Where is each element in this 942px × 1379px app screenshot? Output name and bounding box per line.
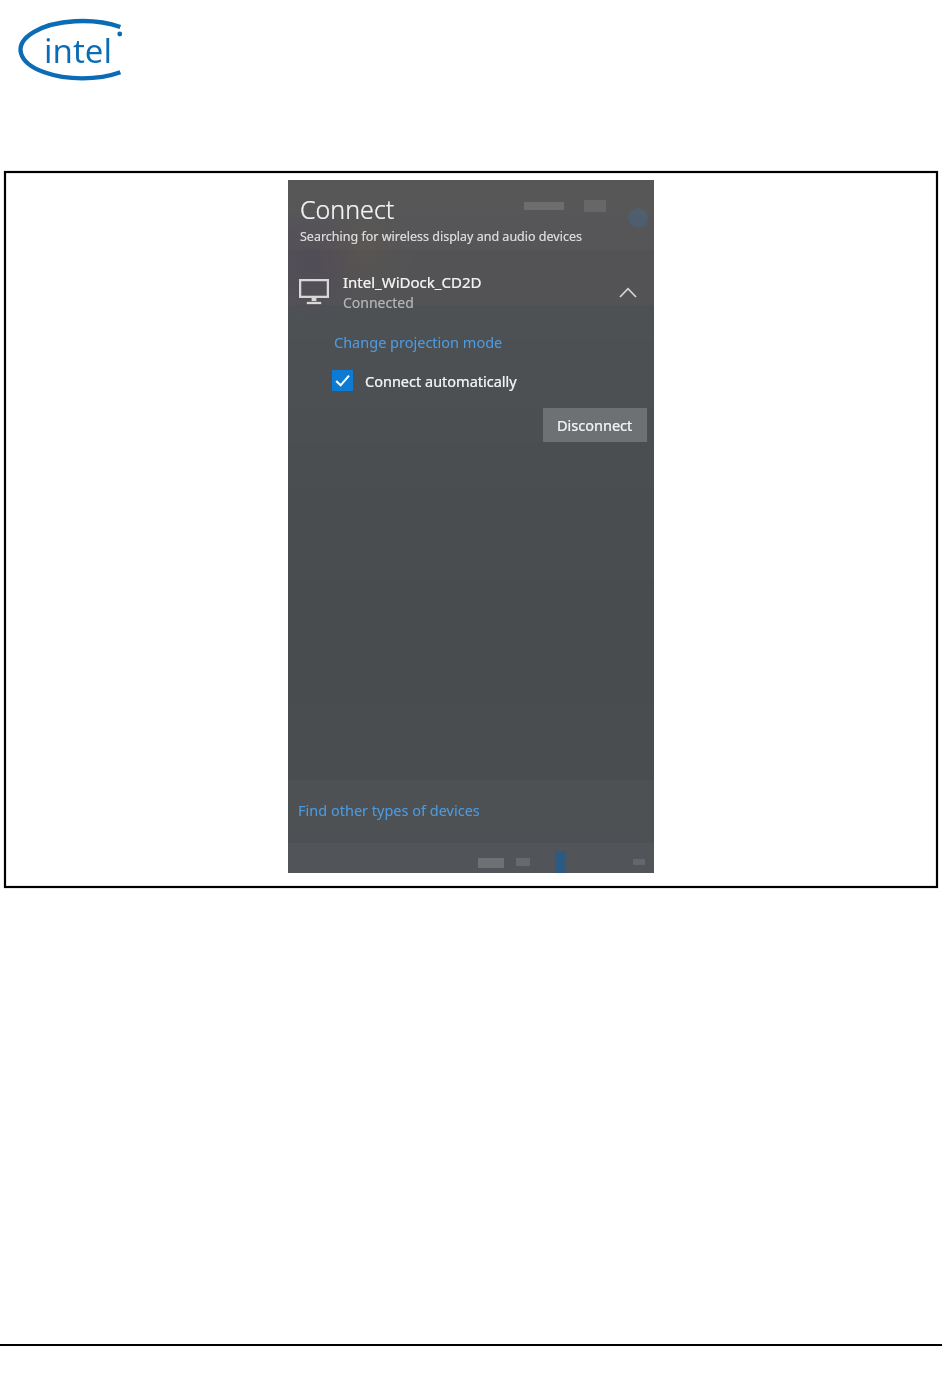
staticText: intel [44, 28, 112, 73]
button[interactable]: Intel_WiDock_CD2D [288, 264, 654, 319]
staticText: Searching for wireless display and audio… [300, 228, 582, 245]
staticText: Intel_WiDock_CD2D [343, 272, 482, 292]
staticText: Connect [300, 192, 395, 226]
button[interactable]: Collapse device details [610, 274, 646, 310]
staticText: Connected [343, 293, 414, 312]
staticText: Connect automatically [365, 371, 517, 391]
button[interactable]: Find other types of devices [298, 800, 480, 820]
button[interactable]: Connect automatically [332, 370, 517, 391]
staticText: Change projection mode [334, 332, 503, 352]
staticText: Disconnect [557, 415, 633, 435]
staticText: Find other types of devices [298, 800, 480, 820]
button[interactable]: Change projection mode [334, 332, 503, 352]
button[interactable]: Disconnect [543, 408, 647, 442]
